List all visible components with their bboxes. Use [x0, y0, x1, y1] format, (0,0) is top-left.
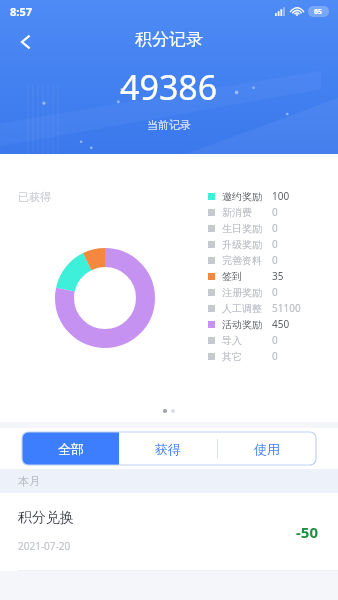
staticText: 51100: [272, 301, 301, 315]
staticText: 0: [272, 253, 278, 267]
staticText: 本月: [18, 474, 40, 488]
staticText: 积分记录: [135, 29, 203, 50]
button[interactable]: 活动奖励: [208, 316, 290, 332]
staticText: 35: [272, 269, 284, 283]
button[interactable]: 使用: [218, 432, 316, 465]
staticText: 使用: [254, 441, 280, 457]
button[interactable]: 完善资料: [208, 252, 278, 268]
button[interactable]: 注册奖励: [208, 284, 278, 300]
staticText: 升级奖励: [222, 238, 262, 251]
staticText: 0: [272, 237, 278, 251]
button[interactable]: 签到: [208, 268, 284, 284]
button[interactable]: 积分兑换: [0, 493, 338, 571]
staticText: 2021-07-20: [18, 539, 71, 553]
staticText: 新消费: [222, 206, 252, 219]
staticText: 100: [272, 189, 290, 203]
staticText: 其它: [222, 350, 242, 363]
staticText: 0: [272, 333, 278, 347]
button[interactable]: 其它: [208, 348, 278, 364]
staticText: 0: [272, 205, 278, 219]
staticText: 49386: [120, 64, 218, 110]
button[interactable]: Back: [6, 22, 46, 62]
button[interactable]: 邀约奖励: [208, 188, 290, 204]
button[interactable]: 导入: [208, 332, 278, 348]
staticText: 积分兑换: [18, 509, 74, 527]
button[interactable]: 获得: [119, 432, 217, 465]
staticText: 邀约奖励: [222, 190, 262, 203]
button[interactable]: 新消费: [208, 204, 278, 220]
staticText: 当前记录: [147, 118, 191, 132]
staticText: 0: [272, 285, 278, 299]
staticText: 65: [314, 7, 323, 17]
staticText: 450: [272, 317, 290, 331]
staticText: 已获得: [18, 190, 51, 204]
staticText: 生日奖励: [222, 222, 262, 235]
button[interactable]: 全部: [22, 432, 119, 465]
staticText: -50: [296, 522, 318, 542]
staticText: 全部: [58, 441, 84, 457]
staticText: 0: [272, 221, 278, 235]
staticText: 活动奖励: [222, 318, 262, 331]
button[interactable]: 升级奖励: [208, 236, 278, 252]
staticText: 人工调整: [222, 302, 262, 315]
staticText: 8:57: [10, 4, 32, 19]
staticText: 0: [272, 349, 278, 363]
staticText: 获得: [155, 441, 181, 457]
staticText: 注册奖励: [222, 286, 262, 299]
staticText: 导入: [222, 334, 242, 347]
button[interactable]: 生日奖励: [208, 220, 278, 236]
button[interactable]: 人工调整: [208, 300, 301, 316]
staticText: 完善资料: [222, 254, 262, 267]
staticText: 签到: [222, 270, 242, 283]
